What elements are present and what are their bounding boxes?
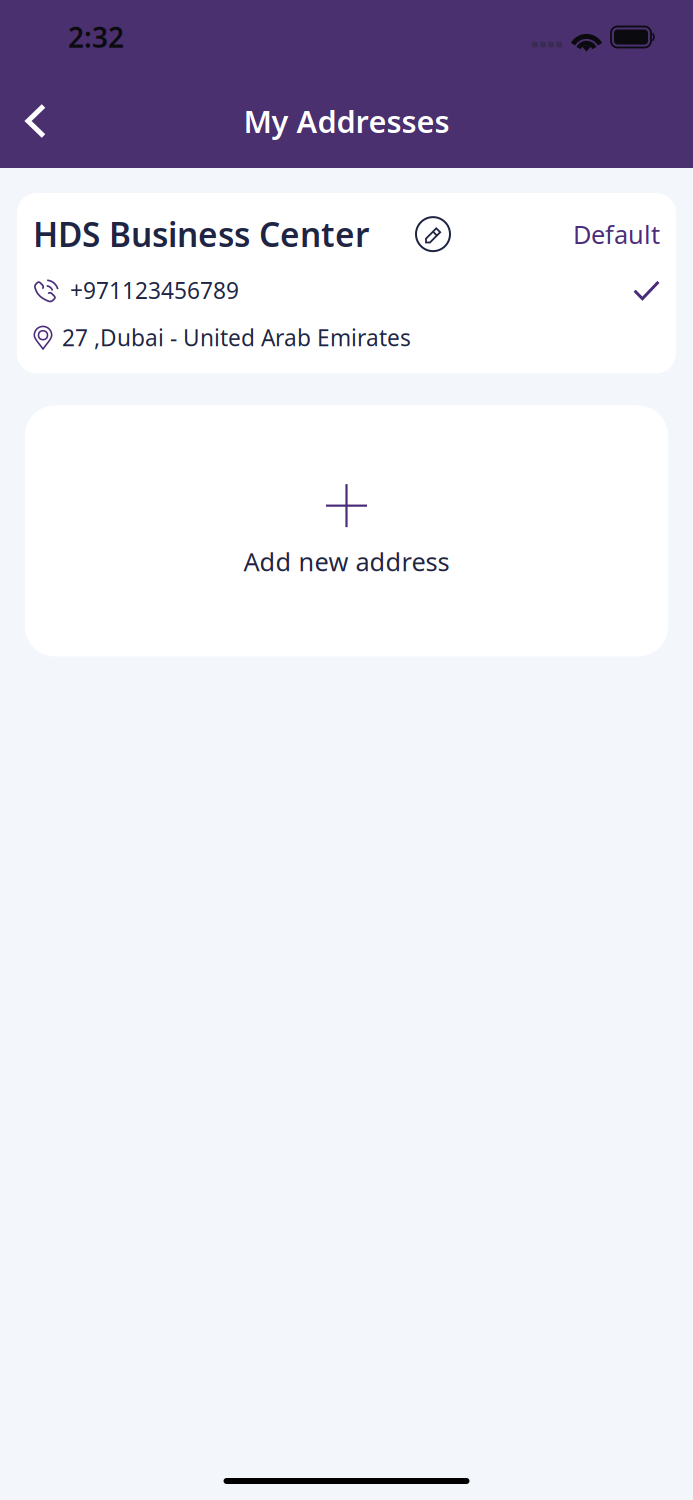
button[interactable]: Edit address [369, 217, 450, 251]
staticText: HDS Business Center [33, 212, 369, 256]
button[interactable]: Add new address [25, 405, 668, 656]
staticText: Default [573, 217, 660, 251]
staticText: My Addresses [243, 101, 449, 141]
staticText: Add new address [243, 545, 449, 578]
staticText: 27 ,Dubai - United Arab Emirates [62, 322, 411, 352]
staticText: 2:32 [68, 18, 124, 56]
button[interactable]: HDS Business Center [17, 193, 676, 373]
staticText: +971123456789 [70, 275, 239, 305]
button[interactable]: Back [6, 90, 66, 152]
